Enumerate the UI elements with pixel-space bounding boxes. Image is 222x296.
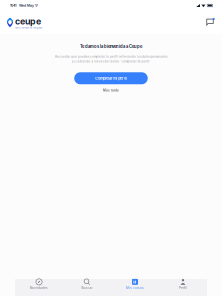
button[interactable]: Novedades: [15, 277, 63, 291]
staticText: Novedades: [30, 286, 48, 290]
staticText: Perfil: [179, 286, 187, 290]
button[interactable]: Perfil: [159, 277, 207, 291]
button[interactable]: Mensajes: [205, 17, 215, 27]
staticText: accediendo a través del botón "Completar…: [71, 60, 150, 63]
staticText: Centro Europeo de Postgrado: [15, 27, 42, 29]
button[interactable]: Buscar: [63, 277, 111, 291]
staticText: Recuerda que puedes completar tu perfil …: [55, 55, 167, 58]
button[interactable]: Mis cursos: [111, 277, 159, 291]
button[interactable]: Más tarde: [101, 87, 121, 94]
staticText: Más tarde: [103, 89, 119, 92]
staticText: Wed May 17: [19, 3, 38, 8]
staticText: 11:41: [10, 3, 16, 8]
staticText: ceupe: [15, 16, 41, 27]
staticText: Te damos la bienvenida a Ceupe: [80, 44, 142, 49]
staticText: Mis cursos: [126, 286, 144, 290]
button[interactable]: Completar mi perfil: [74, 72, 148, 84]
staticText: Buscar: [81, 286, 92, 290]
staticText: Completar mi perfil: [95, 76, 127, 80]
